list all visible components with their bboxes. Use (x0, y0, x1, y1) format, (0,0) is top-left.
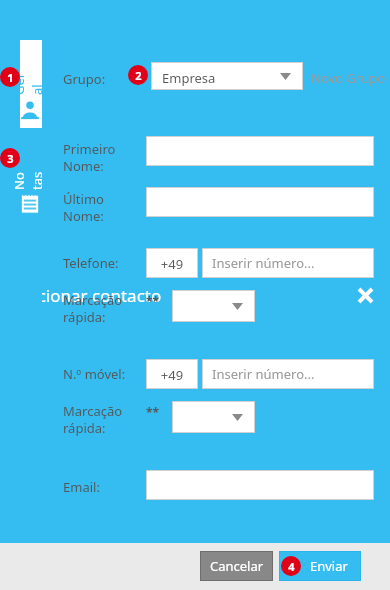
button[interactable] (172, 290, 255, 322)
button[interactable] (151, 62, 303, 90)
staticText: Grupo: (63, 70, 106, 88)
staticText: +49 (146, 366, 198, 389)
button[interactable] (146, 187, 374, 217)
staticText: N.º móvel: (63, 365, 126, 383)
button[interactable] (146, 470, 374, 500)
staticText: 3 (7, 151, 14, 166)
button[interactable] (146, 136, 374, 166)
staticText: ** (146, 293, 160, 309)
staticText: Inserir número... (212, 254, 315, 272)
button[interactable]: Inserir número... (202, 359, 374, 389)
staticText: Enviar (310, 557, 348, 575)
staticText: 4 (288, 559, 295, 574)
staticText: Telefone: (63, 254, 119, 272)
button[interactable]: Enviar (279, 551, 361, 581)
staticText: Cancelar (210, 557, 264, 575)
button[interactable]: +49 (146, 248, 198, 278)
staticText: 1 (7, 70, 14, 85)
button[interactable] (172, 401, 255, 433)
staticText: Último Nome: (63, 190, 104, 225)
staticText: ** (146, 404, 160, 420)
staticText: Notas (10, 168, 46, 190)
staticText: Inserir número... (212, 365, 315, 383)
staticText: Marcação rápida: (63, 402, 123, 437)
button[interactable]: Inserir número... (202, 248, 374, 278)
button[interactable]: Cancelar (200, 551, 273, 581)
staticText: 2 (135, 68, 142, 83)
staticText: +49 (146, 255, 198, 278)
staticText: Geral (10, 73, 46, 95)
button[interactable]: Notas (20, 135, 42, 225)
staticText: Email: (63, 478, 100, 496)
button[interactable]: Geral (20, 40, 42, 128)
staticText: Marcação rápida: (63, 291, 123, 326)
button[interactable]: Fechar (352, 282, 378, 308)
staticText: Empresa (162, 69, 216, 87)
staticText: Adicionar contacto (12, 284, 162, 307)
staticText: Primeiro Nome: (63, 140, 116, 175)
button[interactable]: +49 (146, 359, 198, 389)
button[interactable]: Novo Grupo (311, 69, 386, 87)
